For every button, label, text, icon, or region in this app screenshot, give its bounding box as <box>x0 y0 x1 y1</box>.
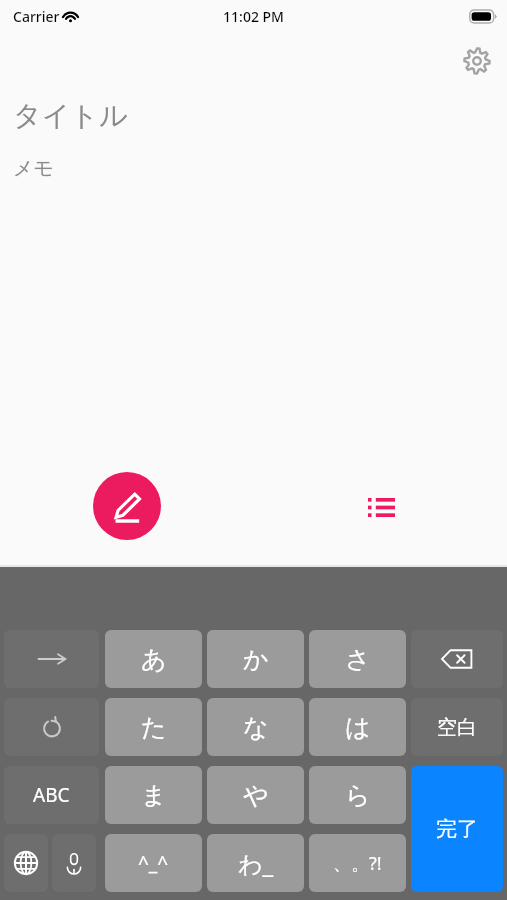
button[interactable]: 完了 <box>411 766 503 892</box>
staticText: ^_^ <box>138 850 169 876</box>
button[interactable]: 、。?! <box>309 834 406 892</box>
button[interactable]: Next candidate <box>4 630 99 688</box>
staticText: か <box>243 644 269 675</box>
staticText: タイトル <box>13 98 128 133</box>
button[interactable]: Backspace <box>411 630 503 688</box>
staticText: 完了 <box>436 816 478 842</box>
button[interactable]: Edit <box>93 472 161 540</box>
button[interactable]: Settings <box>456 40 498 82</box>
staticText: 11:02 PM <box>0 7 507 26</box>
button[interactable]: ら <box>309 766 406 824</box>
button[interactable]: や <box>207 766 304 824</box>
staticText: は <box>345 712 371 743</box>
button[interactable]: ^_^ <box>105 834 202 892</box>
button[interactable]: あ <box>105 630 202 688</box>
staticText: ABC <box>33 782 70 808</box>
button[interactable]: か <box>207 630 304 688</box>
staticText: ま <box>141 780 167 811</box>
staticText: や <box>243 780 269 811</box>
staticText: 空白 <box>437 715 477 740</box>
staticText: た <box>141 712 167 743</box>
button[interactable]: な <box>207 698 304 756</box>
button[interactable]: Change language <box>4 834 48 892</box>
staticText: な <box>243 712 269 743</box>
button[interactable]: Undo <box>4 698 99 756</box>
button[interactable]: ABC <box>4 766 99 824</box>
button[interactable]: さ <box>309 630 406 688</box>
button[interactable]: は <box>309 698 406 756</box>
staticText: Carrier <box>13 7 60 26</box>
staticText: ら <box>345 780 371 811</box>
staticText: わ_ <box>238 847 274 880</box>
staticText: 、。?! <box>333 851 382 876</box>
button[interactable]: ま <box>105 766 202 824</box>
button[interactable]: List <box>356 482 406 532</box>
button[interactable]: 空白 <box>411 698 503 756</box>
staticText: さ <box>345 644 371 675</box>
staticText: あ <box>141 644 167 675</box>
button[interactable]: た <box>105 698 202 756</box>
button[interactable]: Dictation <box>52 834 96 892</box>
button[interactable]: わ_ <box>207 834 304 892</box>
staticText: メモ <box>13 156 54 181</box>
